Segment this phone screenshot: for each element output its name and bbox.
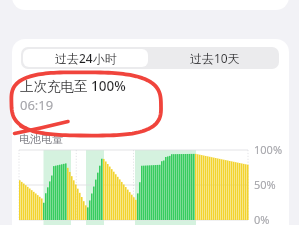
button[interactable]: 过去24小时	[23, 49, 148, 67]
staticText: 电池电量	[19, 132, 63, 146]
staticText: 06:19	[20, 96, 54, 114]
button[interactable]: 过去10天	[150, 47, 279, 69]
staticText: 0%	[254, 212, 270, 225]
staticText: 过去24小时	[55, 50, 117, 66]
staticText: 过去10天	[190, 50, 240, 66]
staticText: 50%	[254, 177, 276, 192]
staticText: 100%	[254, 142, 283, 157]
staticText: 上次充电至 100%	[20, 77, 126, 95]
